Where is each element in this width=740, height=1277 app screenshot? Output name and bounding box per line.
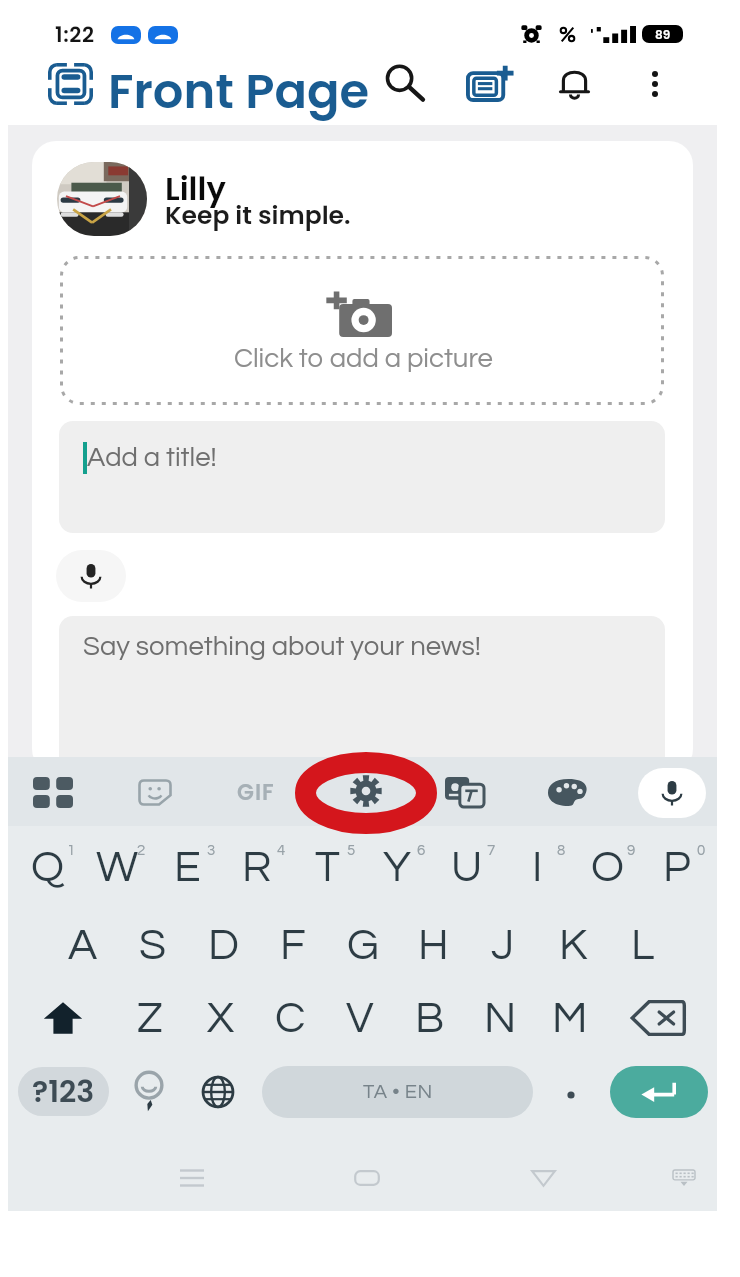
button[interactable]: D (188, 909, 258, 981)
staticText: U (451, 845, 483, 890)
staticText: 1 (67, 843, 76, 858)
staticText: TA • EN (363, 1082, 433, 1103)
button[interactable]: Stickers (125, 762, 185, 822)
button[interactable]: V (325, 982, 395, 1054)
staticText: T (315, 845, 340, 890)
staticText: I (532, 845, 543, 890)
button[interactable]: Voice typing (638, 768, 706, 818)
staticText: Lilly (165, 166, 226, 211)
staticText: E (174, 845, 201, 890)
button[interactable]: Period (545, 1066, 597, 1118)
button[interactable]: B (395, 982, 465, 1054)
staticText: N (484, 996, 517, 1041)
button[interactable]: F (258, 909, 328, 981)
staticText: Q (31, 845, 64, 890)
button[interactable]: K (538, 909, 608, 981)
button[interactable]: Backspace (623, 983, 693, 1053)
button[interactable]: Shift (28, 983, 98, 1053)
staticText: C (275, 996, 306, 1041)
button[interactable]: Z (115, 982, 185, 1054)
staticText: Add a title! (87, 443, 217, 471)
button[interactable]: Y (362, 831, 432, 903)
staticText: B (415, 996, 445, 1041)
staticText: 2 (137, 843, 146, 858)
button[interactable]: Q (12, 831, 82, 903)
button[interactable]: A (48, 909, 118, 981)
staticText: J (491, 923, 515, 968)
button[interactable]: Change language (190, 1064, 246, 1120)
button[interactable]: E (152, 831, 222, 903)
staticText: A (68, 923, 98, 968)
staticText: 3 (207, 843, 216, 858)
staticText: Front Page (108, 58, 370, 125)
button[interactable]: P (642, 831, 712, 903)
button[interactable]: TA • EN (262, 1066, 533, 1118)
button[interactable]: Emoji (121, 1064, 177, 1120)
staticText: X (207, 996, 234, 1041)
staticText: GIF (237, 777, 275, 808)
staticText: 0 (697, 843, 706, 858)
staticText: V (346, 996, 374, 1041)
staticText: 5 (347, 843, 356, 858)
button[interactable]: J (468, 909, 538, 981)
button[interactable]: S (118, 909, 188, 981)
button[interactable]: Voice input (56, 550, 126, 602)
staticText: M (552, 996, 588, 1041)
staticText: W (96, 845, 139, 890)
button[interactable]: X (185, 982, 255, 1054)
button[interactable]: Home (339, 1150, 395, 1206)
button[interactable]: H (398, 909, 468, 981)
staticText: 4 (277, 843, 286, 858)
staticText: Keep it simple. (165, 198, 351, 233)
button[interactable]: T (292, 831, 362, 903)
staticText: F (280, 923, 306, 968)
button[interactable]: Settings (295, 752, 437, 834)
staticText: 1:22 (55, 20, 95, 49)
button[interactable]: M (535, 982, 605, 1054)
button[interactable]: Themes (538, 762, 598, 822)
staticText: Say something about your news! (83, 632, 481, 660)
staticText: ?123 (32, 1071, 95, 1113)
button[interactable]: ?123 (18, 1067, 109, 1116)
button[interactable]: GIF (226, 762, 286, 822)
staticText: L (631, 923, 655, 968)
button[interactable]: U (432, 831, 502, 903)
button[interactable]: N (465, 982, 535, 1054)
staticText: Click to add a picture (234, 344, 493, 372)
staticText: R (242, 845, 272, 890)
button[interactable]: O (572, 831, 642, 903)
button[interactable]: Translate (434, 762, 494, 822)
button[interactable]: W (82, 831, 152, 903)
staticText: K (559, 923, 588, 968)
staticText: G (347, 923, 379, 968)
button[interactable]: Say something about your news! (59, 616, 665, 773)
button[interactable]: Recents (164, 1150, 220, 1206)
staticText: D (208, 923, 239, 968)
staticText: 8 (557, 843, 566, 858)
staticText: 7 (487, 843, 496, 858)
staticText: O (591, 845, 624, 890)
button[interactable]: Hide keyboard (656, 1150, 712, 1206)
staticText: 89 (655, 26, 671, 43)
button[interactable]: Keyboard apps (23, 762, 83, 822)
button[interactable]: Back (515, 1150, 571, 1206)
staticText: H (418, 923, 449, 968)
button[interactable]: Enter (610, 1066, 708, 1118)
button[interactable]: G (328, 909, 398, 981)
button[interactable]: I (502, 831, 572, 903)
staticText: Z (137, 996, 163, 1041)
button[interactable]: Click to add a picture (60, 256, 664, 405)
staticText: P (663, 845, 691, 890)
staticText: Y (383, 845, 411, 890)
button[interactable]: Search (379, 58, 429, 108)
button[interactable]: R (222, 831, 292, 903)
button[interactable]: Create post (465, 58, 515, 108)
button[interactable]: L (608, 909, 678, 981)
staticText: S (139, 923, 167, 968)
staticText: 6 (417, 843, 426, 858)
button[interactable]: C (255, 982, 325, 1054)
staticText: 9 (627, 843, 636, 858)
button[interactable]: Notifications (549, 58, 599, 108)
button[interactable]: More options (630, 59, 680, 109)
button[interactable]: Add a title! (59, 421, 665, 533)
